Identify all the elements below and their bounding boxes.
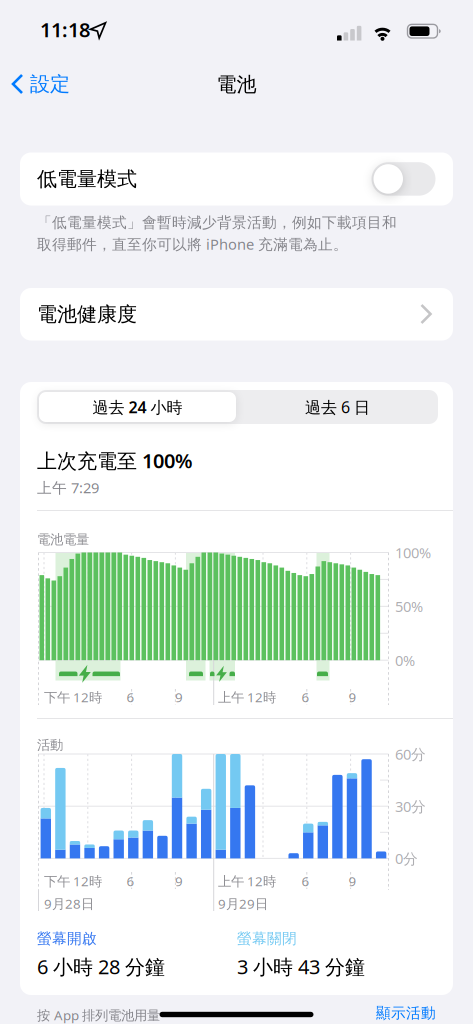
staticText: 9	[348, 688, 356, 706]
staticText: 上午 7:29	[37, 478, 99, 497]
staticText: 6 小時 28 分鐘	[37, 953, 165, 980]
staticText: 9	[175, 872, 183, 890]
staticText: 30分	[395, 796, 426, 816]
staticText: 50%	[395, 597, 423, 616]
staticText: 「低電量模式」會暫時減少背景活動，例如下載項目和	[37, 213, 397, 231]
staticText: 電池電量	[37, 531, 89, 548]
staticText: 上午 12時	[218, 872, 276, 890]
staticText: 螢幕關閉	[237, 929, 297, 947]
staticText: 下午 12時	[44, 688, 102, 706]
button[interactable]: 電池健康度	[20, 288, 453, 340]
staticText: 電池	[216, 72, 256, 97]
staticText: 6	[301, 688, 309, 706]
staticText: 螢幕開啟	[37, 929, 97, 947]
staticText: 6	[126, 688, 134, 706]
staticText: 下午 12時	[44, 872, 102, 890]
staticText: 低電量模式	[37, 167, 137, 191]
staticText: 9月28日	[44, 895, 94, 912]
staticText: 6	[126, 872, 134, 890]
staticText: 3 小時 43 分鐘	[237, 953, 365, 980]
staticText: 100%	[395, 543, 431, 562]
staticText: 6	[301, 872, 309, 890]
staticText: 設定	[30, 72, 70, 96]
staticText: 顯示活動	[376, 1004, 436, 1022]
staticText: 9	[348, 872, 356, 890]
staticText: 按 App 排列電池用量	[37, 1006, 160, 1024]
staticText: 上次充電至 100%	[37, 447, 193, 474]
button[interactable]: 低電量模式	[371, 162, 435, 196]
staticText: 上午 12時	[218, 688, 276, 706]
staticText: 11:18	[40, 16, 90, 43]
staticText: 9	[175, 688, 183, 706]
staticText: 0%	[395, 650, 415, 670]
button[interactable]: 返回設定	[11, 64, 97, 104]
button[interactable]: 過去 24 小時	[39, 392, 236, 422]
staticText: 9月29日	[218, 895, 268, 912]
staticText: 60分	[395, 744, 426, 764]
staticText: 電池健康度	[37, 302, 137, 327]
button[interactable]: 過去 6 日	[239, 392, 436, 422]
staticText: 活動	[37, 737, 63, 753]
staticText: 0分	[395, 849, 418, 868]
staticText: 取得郵件，直至你可以將 iPhone 充滿電為止。	[37, 234, 348, 254]
staticText: 過去 24 小時	[92, 396, 182, 418]
staticText: 過去 6 日	[305, 396, 370, 418]
button[interactable]: 顯示活動	[346, 998, 436, 1024]
